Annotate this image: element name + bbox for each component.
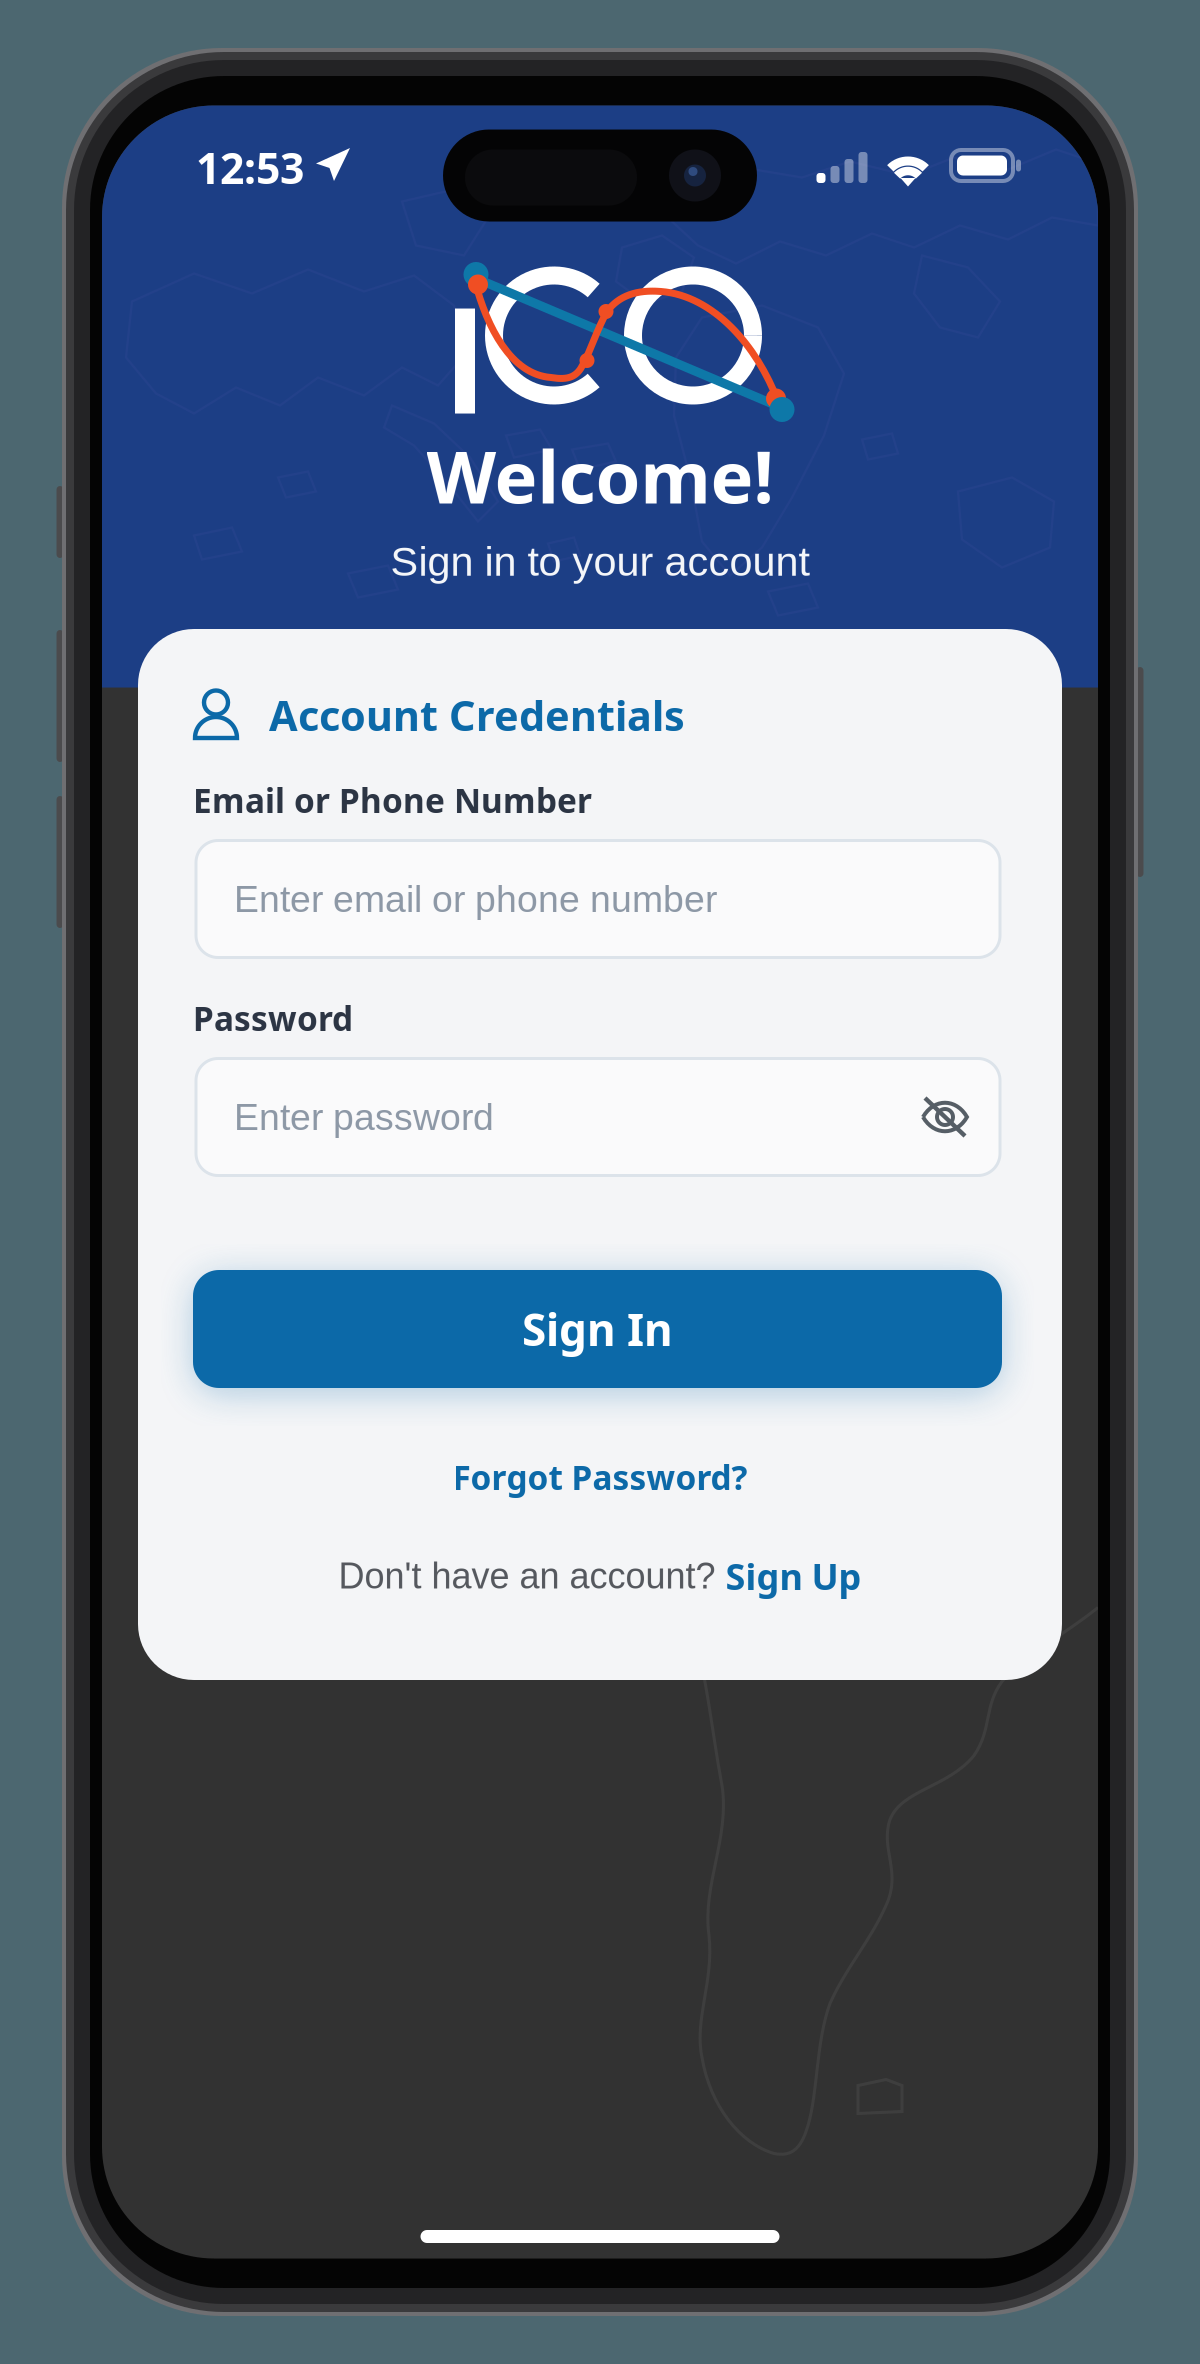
staticText: Password — [193, 995, 353, 1041]
staticText: Forgot Password? — [452, 1454, 747, 1500]
staticText: Enter password — [234, 1096, 494, 1138]
button[interactable]: Sign Up — [725, 1551, 861, 1600]
staticText: Email or Phone Number — [193, 777, 592, 823]
staticText: Enter email or phone number — [234, 878, 717, 920]
staticText: Sign in to your account — [390, 538, 809, 585]
staticText: Account Credentials — [269, 687, 685, 743]
button[interactable]: Forgot Password? — [320, 1446, 880, 1508]
staticText: Don't have an account? — [338, 1556, 725, 1596]
staticText: 12:53 — [196, 138, 304, 196]
staticText: Welcome! — [426, 426, 773, 525]
button[interactable]: Sign In — [193, 1270, 1002, 1388]
staticText: Sign In — [522, 1299, 673, 1359]
staticText: Sign Up — [725, 1551, 861, 1600]
